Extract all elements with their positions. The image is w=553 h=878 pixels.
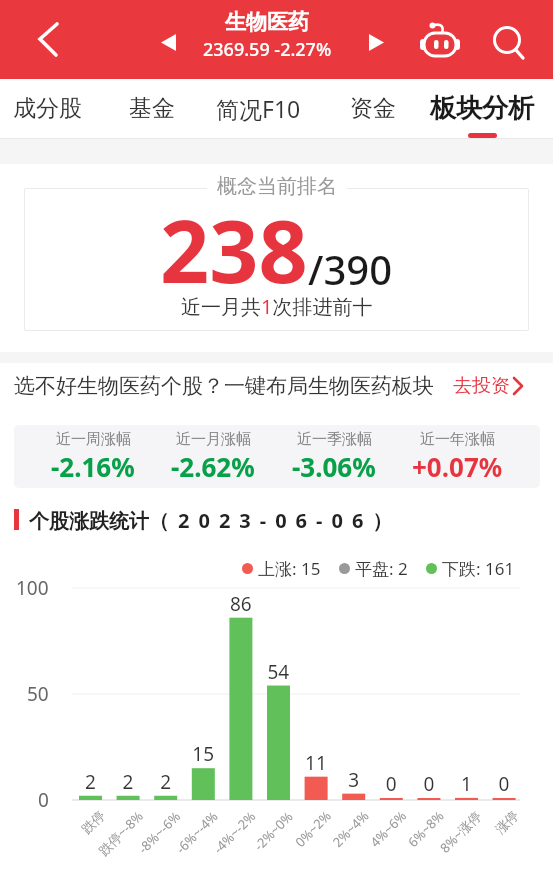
staticText: 下跌: 161 bbox=[442, 557, 515, 580]
staticText: 个股涨跌统计（2023-06-06） bbox=[29, 507, 402, 534]
staticText: -2.16% bbox=[51, 449, 135, 484]
staticText: 2369.59 -2.27% bbox=[203, 37, 332, 62]
staticText: 平盘: 2 bbox=[355, 557, 408, 580]
staticText: 资金 bbox=[350, 94, 396, 123]
button[interactable]: 选不好生物医药个股？一键布局生物医药板块 bbox=[0, 363, 553, 408]
staticText: +0.07% bbox=[412, 449, 503, 484]
button[interactable] bbox=[487, 20, 531, 64]
staticText: 近一月涨幅 bbox=[176, 430, 251, 449]
button[interactable]: 简况F10 bbox=[203, 79, 313, 138]
button[interactable] bbox=[365, 28, 391, 54]
staticText: 成分股 bbox=[13, 94, 82, 123]
button[interactable]: 资金 bbox=[318, 79, 428, 138]
staticText: 238 bbox=[160, 191, 308, 308]
button[interactable] bbox=[416, 17, 466, 65]
button[interactable] bbox=[20, 16, 64, 60]
staticText: 近一周涨幅 bbox=[56, 430, 131, 449]
staticText: -2.62% bbox=[171, 449, 255, 484]
button[interactable]: 成分股 bbox=[0, 79, 102, 138]
staticText: -3.06% bbox=[292, 449, 376, 484]
staticText: 选不好生物医药个股？一键布局生物医药板块 bbox=[14, 373, 434, 399]
staticText: 板块分析 bbox=[430, 92, 534, 125]
staticText: 去投资 bbox=[453, 374, 510, 398]
staticText: 近一季涨幅 bbox=[297, 430, 372, 449]
staticText: 近一月共1次排进前十 bbox=[181, 293, 373, 320]
staticText: 简况F10 bbox=[216, 93, 301, 124]
staticText: 基金 bbox=[129, 94, 175, 123]
button[interactable]: 基金 bbox=[97, 79, 207, 138]
staticText: 生物医药 bbox=[225, 9, 309, 35]
staticText: /390 bbox=[308, 242, 393, 296]
button[interactable] bbox=[154, 28, 180, 54]
staticText: 概念当前排名 bbox=[217, 174, 337, 199]
button[interactable]: 板块分析 bbox=[427, 79, 537, 138]
staticText: 近一年涨幅 bbox=[420, 430, 495, 449]
staticText: 上涨: 15 bbox=[258, 557, 321, 580]
